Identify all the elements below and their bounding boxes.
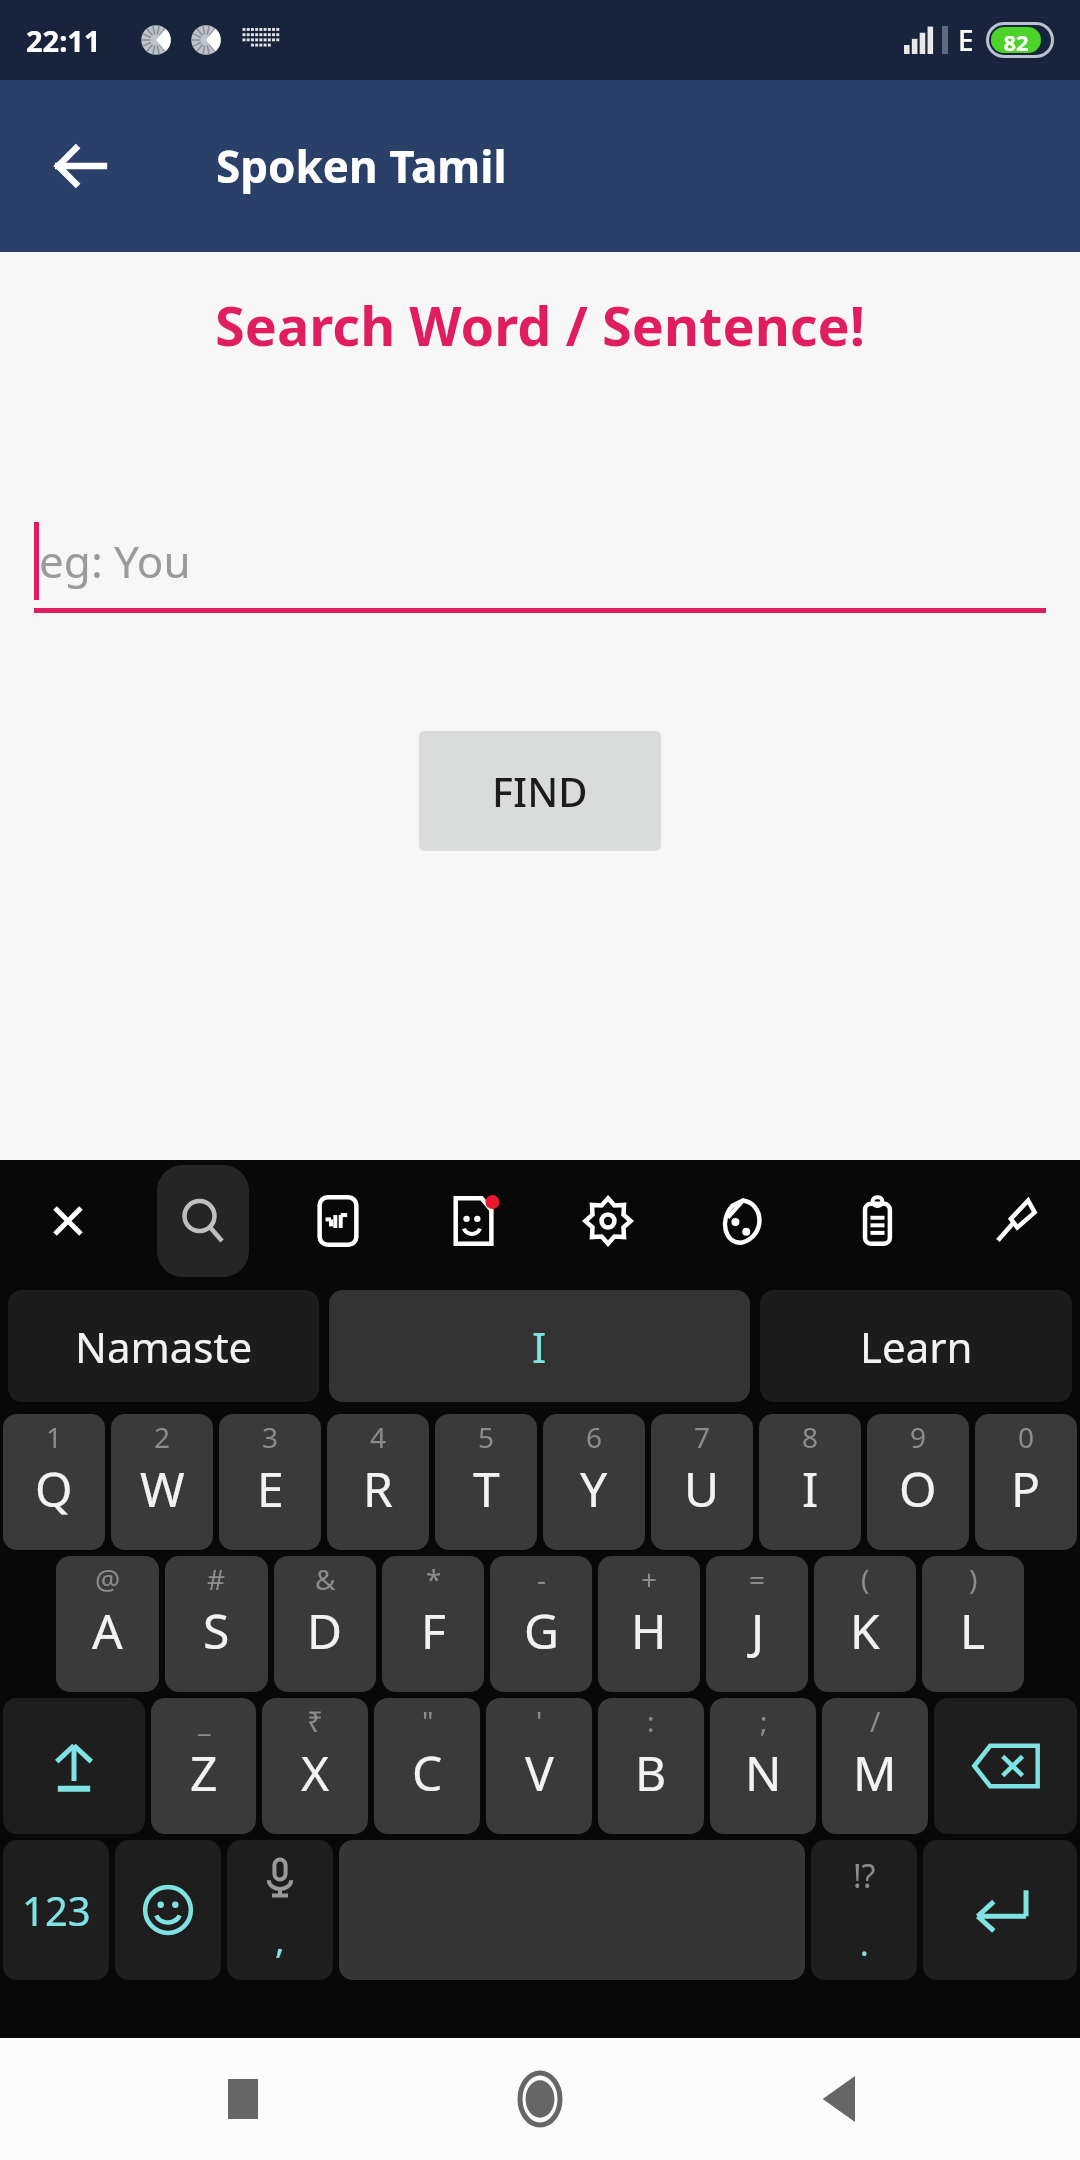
- staticText: O: [899, 1456, 937, 1521]
- staticText: 82: [991, 27, 1041, 53]
- button[interactable]: Emoji: [115, 1840, 221, 1980]
- button[interactable]: 7: [651, 1414, 753, 1550]
- staticText: Search Word / Sentence!: [0, 288, 1080, 362]
- button[interactable]: Voice input: [227, 1840, 333, 1980]
- button[interactable]: Learn: [760, 1290, 1072, 1402]
- staticText: 4: [370, 1418, 387, 1456]
- button[interactable]: *: [382, 1556, 484, 1692]
- staticText: T: [473, 1456, 500, 1521]
- button[interactable]: Clipboard: [810, 1160, 945, 1282]
- staticText: =: [749, 1560, 766, 1598]
- staticText: .: [860, 1922, 869, 1966]
- button[interactable]: Recents: [188, 2044, 298, 2154]
- staticText: Q: [35, 1456, 73, 1521]
- button[interactable]: #: [165, 1556, 268, 1692]
- button[interactable]: Shift: [3, 1698, 145, 1834]
- button[interactable]: Stickers: [405, 1160, 540, 1282]
- button[interactable]: Search: [157, 1165, 249, 1277]
- staticText: E: [257, 1456, 284, 1521]
- staticText: 7: [694, 1418, 711, 1456]
- staticText: ': [536, 1702, 543, 1740]
- button[interactable]: 8: [759, 1414, 861, 1550]
- staticText: I: [802, 1456, 819, 1521]
- staticText: I: [532, 1318, 547, 1375]
- button[interactable]: Settings: [540, 1160, 675, 1282]
- button[interactable]: =: [706, 1556, 808, 1692]
- staticText: _: [198, 1702, 211, 1740]
- staticText: 9: [910, 1418, 927, 1456]
- button[interactable]: I: [329, 1290, 750, 1402]
- button[interactable]: 0: [975, 1414, 1077, 1550]
- staticText: D: [307, 1598, 343, 1663]
- staticText: -: [537, 1560, 547, 1598]
- button[interactable]: ': [486, 1698, 592, 1834]
- staticText: FIND: [492, 764, 588, 818]
- staticText: #: [207, 1560, 226, 1598]
- button[interactable]: Close: [0, 1160, 135, 1282]
- button[interactable]: -: [490, 1556, 592, 1692]
- button[interactable]: _: [151, 1698, 256, 1834]
- staticText: @: [95, 1560, 121, 1598]
- button[interactable]: 5: [435, 1414, 537, 1550]
- button[interactable]: /: [822, 1698, 928, 1834]
- button[interactable]: 1: [3, 1414, 105, 1550]
- staticText: K: [850, 1598, 880, 1663]
- staticText: A: [92, 1598, 123, 1663]
- staticText: Spoken Tamil: [216, 136, 507, 196]
- staticText: P: [1011, 1456, 1041, 1521]
- button[interactable]: Back: [783, 2044, 893, 2154]
- staticText: H: [631, 1598, 667, 1663]
- button[interactable]: 2: [111, 1414, 213, 1550]
- button[interactable]: :: [598, 1698, 704, 1834]
- button[interactable]: Backspace: [934, 1698, 1077, 1834]
- staticText: !?: [853, 1854, 876, 1898]
- staticText: U: [684, 1456, 720, 1521]
- staticText: G: [524, 1598, 559, 1663]
- button[interactable]: 123: [3, 1840, 109, 1980]
- button[interactable]: Back: [42, 128, 118, 204]
- button[interactable]: FIND: [419, 731, 661, 851]
- staticText: Z: [190, 1740, 218, 1805]
- staticText: C: [412, 1740, 443, 1805]
- button[interactable]: ₹: [262, 1698, 368, 1834]
- staticText: +: [641, 1560, 658, 1598]
- button[interactable]: (: [814, 1556, 916, 1692]
- staticText: ): [969, 1560, 978, 1598]
- staticText: E: [958, 21, 974, 59]
- staticText: 0: [1018, 1418, 1035, 1456]
- staticText: W: [140, 1456, 185, 1521]
- button[interactable]: !?: [811, 1840, 917, 1980]
- button[interactable]: Pin: [945, 1160, 1080, 1282]
- button[interactable]: 4: [327, 1414, 429, 1550]
- button[interactable]: Themes: [675, 1160, 810, 1282]
- staticText: N: [745, 1740, 782, 1805]
- staticText: (: [861, 1560, 870, 1598]
- button[interactable]: +: [598, 1556, 700, 1692]
- button[interactable]: ;: [710, 1698, 816, 1834]
- staticText: 3: [262, 1418, 279, 1456]
- button[interactable]: ): [922, 1556, 1024, 1692]
- staticText: 123: [22, 1883, 91, 1937]
- button[interactable]: &: [274, 1556, 376, 1692]
- staticText: Y: [580, 1456, 608, 1521]
- staticText: 22:11: [26, 21, 101, 60]
- button[interactable]: 6: [543, 1414, 645, 1550]
- staticText: ,: [275, 1915, 285, 1964]
- button[interactable]: GIF: [270, 1160, 405, 1282]
- staticText: V: [525, 1740, 554, 1805]
- button[interactable]: 3: [219, 1414, 321, 1550]
- staticText: ;: [760, 1702, 768, 1740]
- button[interactable]: 9: [867, 1414, 969, 1550]
- button[interactable]: ": [374, 1698, 480, 1834]
- staticText: M: [853, 1740, 897, 1805]
- staticText: Learn: [860, 1318, 973, 1375]
- button[interactable]: @: [56, 1556, 159, 1692]
- button[interactable]: Namaste: [8, 1290, 319, 1402]
- staticText: B: [635, 1740, 667, 1805]
- staticText: Namaste: [75, 1318, 253, 1375]
- button[interactable]: Home: [485, 2044, 595, 2154]
- staticText: 1: [46, 1418, 63, 1456]
- button[interactable]: Enter: [923, 1840, 1077, 1980]
- staticText: ₹: [307, 1702, 324, 1740]
